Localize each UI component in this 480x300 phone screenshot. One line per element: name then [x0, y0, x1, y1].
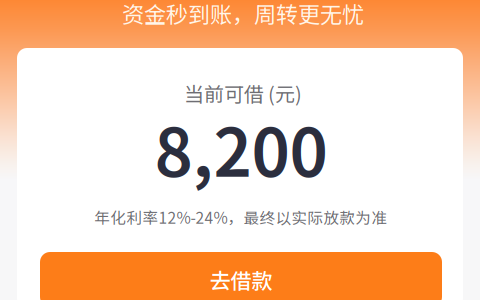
staticText: 去借款: [209, 264, 272, 295]
button[interactable]: 去借款: [40, 252, 442, 300]
staticText: 资金秒到账，周转更无忧: [122, 0, 364, 29]
staticText: 当前可借 (元): [184, 78, 302, 107]
staticText: 8,200: [154, 100, 327, 196]
staticText: 年化利率12%-24%，最终以实际放款为准: [94, 206, 387, 228]
